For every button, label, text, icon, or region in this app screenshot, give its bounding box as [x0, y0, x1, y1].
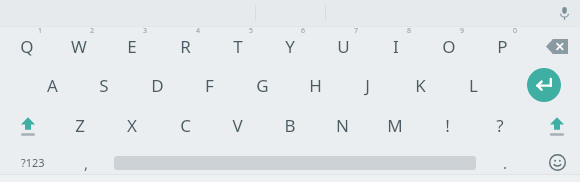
staticText: N	[336, 114, 349, 137]
staticText: D	[151, 74, 164, 97]
staticText: F	[205, 74, 214, 97]
staticText: E	[127, 35, 137, 58]
staticText: 2	[90, 26, 95, 36]
button[interactable]: B	[264, 106, 316, 144]
button[interactable]: X	[106, 106, 158, 144]
staticText: T	[233, 35, 243, 58]
staticText: R	[180, 35, 191, 58]
button[interactable]: M	[369, 106, 421, 144]
staticText: G	[256, 74, 269, 97]
button[interactable]: ?	[474, 106, 526, 144]
staticText: V	[232, 114, 243, 137]
staticText: I	[393, 35, 399, 58]
button[interactable]: I	[370, 27, 422, 65]
button[interactable]: C	[159, 106, 211, 144]
staticText: 7	[354, 26, 359, 36]
staticText: L	[469, 74, 478, 97]
button[interactable]: .	[484, 146, 526, 179]
staticText: C	[180, 114, 191, 137]
button[interactable]: F	[183, 66, 235, 104]
button[interactable]: G	[236, 66, 288, 104]
staticText: U	[337, 35, 350, 58]
button[interactable]: E	[106, 27, 158, 65]
staticText: A	[47, 74, 58, 97]
staticText: X	[127, 114, 137, 137]
staticText: M	[387, 114, 403, 137]
staticText: Q	[20, 35, 34, 58]
button[interactable]: Enter	[524, 65, 564, 105]
button[interactable]: Z	[54, 106, 106, 144]
staticText: 9	[460, 26, 465, 36]
button[interactable]: Backspace	[536, 28, 578, 64]
button[interactable]: ,	[64, 146, 108, 179]
staticText: P	[497, 35, 508, 58]
button[interactable]: A	[26, 66, 78, 104]
staticText: 5	[249, 26, 254, 36]
staticText: !	[445, 114, 450, 137]
button[interactable]: Space	[112, 146, 478, 179]
button[interactable]: K	[394, 66, 446, 104]
button[interactable]: ?123	[6, 146, 60, 179]
staticText: 4	[196, 26, 201, 36]
staticText: 0	[513, 26, 518, 36]
staticText: Z	[75, 114, 85, 137]
button[interactable]: D	[131, 66, 183, 104]
staticText: K	[415, 74, 426, 97]
button[interactable]: P	[476, 27, 528, 65]
staticText: S	[99, 74, 109, 97]
button[interactable]: T	[212, 27, 264, 65]
staticText: ,	[84, 153, 89, 173]
button[interactable]: O	[423, 27, 475, 65]
button[interactable]: H	[289, 66, 341, 104]
button[interactable]: R	[159, 27, 211, 65]
button[interactable]: V	[211, 106, 263, 144]
button[interactable]: Y	[264, 27, 316, 65]
button[interactable]: S	[78, 66, 130, 104]
staticText: ?123	[21, 155, 45, 170]
staticText: O	[442, 35, 456, 58]
staticText: H	[309, 74, 322, 97]
button[interactable]: Shift	[533, 106, 580, 144]
staticText: 8	[407, 26, 412, 36]
staticText: ?	[496, 114, 504, 137]
staticText: B	[284, 114, 296, 137]
staticText: 1	[38, 26, 43, 36]
staticText: .	[503, 153, 508, 173]
staticText: 6	[301, 26, 306, 36]
staticText: 3	[143, 26, 148, 36]
button[interactable]: Voice input	[550, 0, 579, 26]
button[interactable]: J	[341, 66, 393, 104]
button[interactable]: Shift	[4, 106, 52, 144]
staticText: Y	[285, 35, 295, 58]
button[interactable]: Q	[1, 27, 53, 65]
button[interactable]: !	[421, 106, 473, 144]
button[interactable]: N	[316, 106, 368, 144]
button[interactable]: U	[317, 27, 369, 65]
staticText: J	[365, 74, 370, 97]
staticText: W	[71, 35, 87, 58]
button[interactable]: L	[447, 66, 499, 104]
button[interactable]: W	[53, 27, 105, 65]
button[interactable]: Emoji	[536, 146, 578, 179]
